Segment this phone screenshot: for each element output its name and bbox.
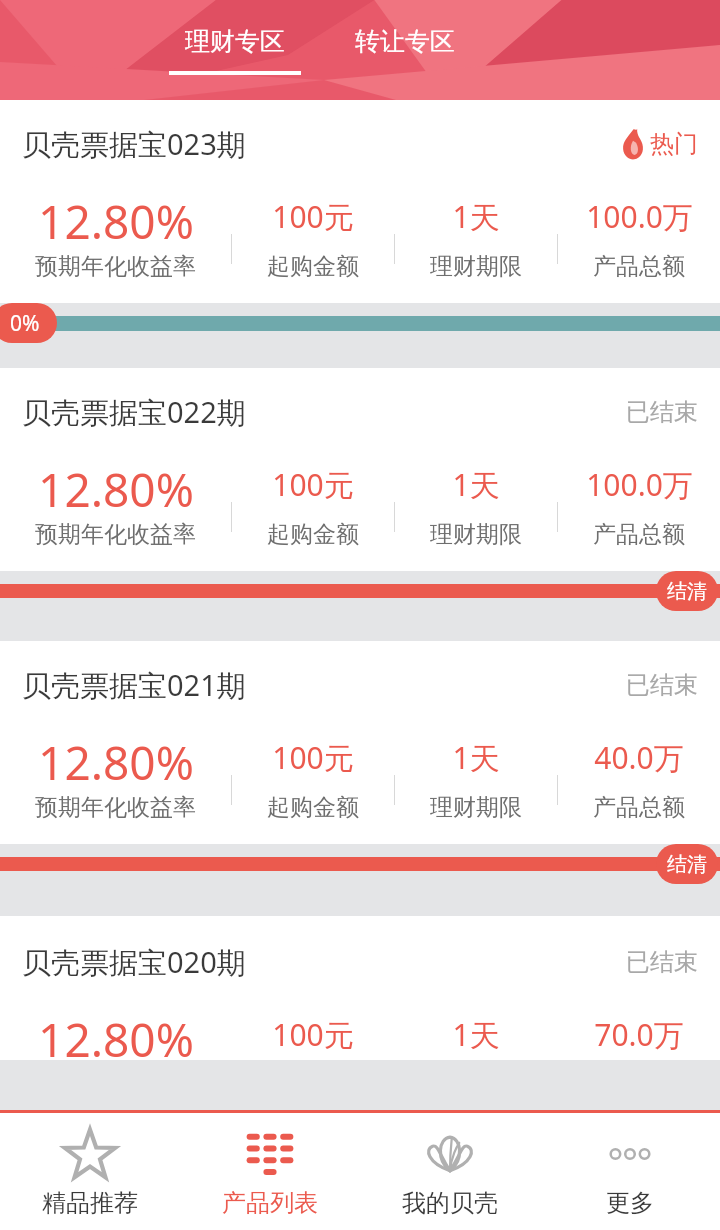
staticText: 12.80% (38, 1008, 194, 1060)
staticText: 贝壳票据宝023期 (22, 124, 246, 164)
staticText: 精品推荐 (42, 1188, 138, 1218)
staticText: 预期年化收益率 (35, 520, 196, 549)
staticText: 预期年化收益率 (35, 793, 196, 822)
staticText: 起购金额 (267, 520, 359, 549)
staticText: 12.80% (38, 190, 194, 242)
staticText: 100元 (272, 196, 354, 237)
staticText: 起购金额 (267, 793, 359, 822)
staticText: 理财期限 (430, 252, 522, 281)
staticText: 热门 (650, 129, 698, 159)
staticText: 更多 (606, 1188, 654, 1218)
staticText: 起购金额 (267, 252, 359, 281)
staticText: 理财期限 (430, 520, 522, 549)
staticText: 1天 (452, 1014, 500, 1055)
staticText: 1天 (452, 196, 500, 237)
other: 精品推荐 (62, 1126, 118, 1182)
staticText: 贝壳票据宝022期 (22, 392, 246, 432)
button[interactable]: 转让专区 (320, 0, 490, 100)
other: 我的贝壳 (421, 1126, 479, 1182)
staticText: 结清 (667, 579, 707, 604)
staticText: 12.80% (38, 731, 194, 783)
staticText: 1天 (452, 464, 500, 505)
staticText: 100.0万 (586, 464, 693, 505)
button[interactable]: 理财专区 (150, 0, 320, 100)
button[interactable]: 贝壳票据宝021期 (0, 641, 720, 844)
staticText: 100元 (272, 464, 354, 505)
staticText: 贝壳票据宝021期 (22, 665, 246, 705)
staticText: 已结束 (626, 947, 698, 977)
staticText: 预期年化收益率 (35, 252, 196, 281)
staticText: 产品总额 (593, 252, 685, 281)
staticText: 理财期限 (430, 793, 522, 822)
button[interactable]: 产品列表 (180, 1113, 360, 1230)
button[interactable]: 贝壳票据宝022期 (0, 368, 720, 571)
staticText: 转让专区 (355, 26, 455, 57)
other: 产品列表 (242, 1126, 298, 1182)
staticText: 1天 (452, 737, 500, 778)
staticText: 结清 (667, 852, 707, 877)
button[interactable]: 我的贝壳 (360, 1113, 540, 1230)
staticText: 100元 (272, 1014, 354, 1055)
staticText: 已结束 (626, 670, 698, 700)
staticText: 100.0万 (586, 196, 693, 237)
staticText: 产品总额 (593, 520, 685, 549)
staticText: 我的贝壳 (402, 1188, 498, 1218)
staticText: 已结束 (626, 397, 698, 427)
button[interactable]: 更多 (540, 1113, 720, 1230)
button[interactable]: 贝壳票据宝020期 (0, 916, 720, 1060)
staticText: 理财专区 (185, 26, 285, 57)
other: 更多 (602, 1126, 658, 1182)
staticText: 产品列表 (222, 1188, 318, 1218)
staticText: 100元 (272, 737, 354, 778)
staticText: 12.80% (38, 458, 194, 510)
staticText: 产品总额 (593, 793, 685, 822)
staticText: 40.0万 (594, 737, 684, 778)
button[interactable]: 贝壳票据宝023期 (0, 100, 720, 303)
staticText: 贝壳票据宝020期 (22, 942, 246, 982)
staticText: 70.0万 (594, 1014, 684, 1055)
staticText: 0% (10, 309, 40, 338)
button[interactable]: 精品推荐 (0, 1113, 180, 1230)
